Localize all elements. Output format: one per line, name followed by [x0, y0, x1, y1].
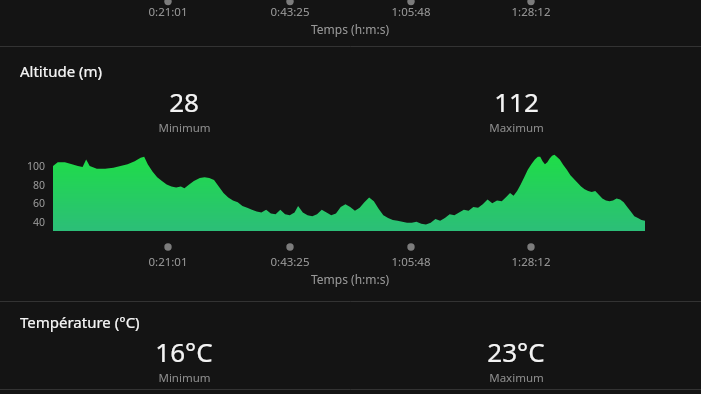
button[interactable]: 16°C	[94, 334, 274, 386]
staticText: Altitude (m)	[20, 61, 103, 81]
staticText: 1:05:48	[391, 254, 431, 270]
button[interactable]: 112	[426, 84, 606, 136]
button[interactable]: Altitude profile chart	[0, 47, 701, 301]
staticText: 60	[33, 196, 46, 210]
staticText: 1:28:12	[511, 254, 551, 270]
staticText: 1:28:12	[511, 4, 551, 20]
button[interactable]: 23°C	[426, 334, 606, 386]
staticText: Maximum	[489, 370, 544, 386]
staticText: Température (°C)	[20, 312, 140, 332]
staticText: Temps (h:m:s)	[311, 21, 390, 37]
button[interactable]: 28	[94, 84, 274, 136]
staticText: 100	[27, 159, 46, 173]
staticText: Maximum	[489, 120, 544, 136]
staticText: 40	[33, 215, 46, 229]
staticText: Temps (h:m:s)	[311, 271, 390, 287]
staticText: 0:43:25	[270, 4, 310, 20]
staticText: 0:21:01	[148, 4, 188, 20]
staticText: 1:05:48	[391, 4, 431, 20]
staticText: Minimum	[158, 370, 211, 386]
staticText: 80	[33, 178, 46, 192]
staticText: 112	[494, 84, 539, 119]
staticText: 0:43:25	[270, 254, 310, 270]
staticText: 28	[169, 84, 199, 119]
staticText: 16°C	[155, 334, 213, 369]
staticText: 0:21:01	[148, 254, 188, 270]
staticText: Minimum	[158, 120, 211, 136]
staticText: 23°C	[487, 334, 545, 369]
